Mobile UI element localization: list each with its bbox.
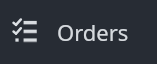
other: Orders checklist (13, 20, 37, 44)
staticText: Orders (57, 17, 129, 47)
button[interactable]: Orders checklist (0, 0, 157, 64)
